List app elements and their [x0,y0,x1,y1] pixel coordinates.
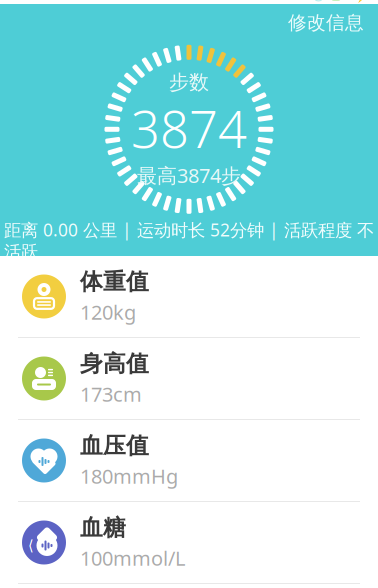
staticText: ⟨ [28,537,34,554]
staticText: 下午3:01 [179,0,242,7]
button[interactable]: 身高值 [0,338,378,420]
staticText: 血压值 [80,432,149,460]
staticText: ⚡ [355,0,370,3]
staticText: 120kg [80,299,136,325]
button[interactable]: ⟨ [0,502,378,584]
staticText: 173cm [80,381,142,407]
staticText: 最高3874步 [137,162,241,189]
staticText: 100mmol/L [80,545,185,571]
button[interactable]: 体重值 [0,256,378,338]
staticText: 180mmHg [80,463,178,489]
staticText: 身高值 [80,350,149,378]
staticText: 中国移动 [24,0,84,5]
button[interactable]: 血压值 [0,420,378,502]
staticText: 4G [89,0,108,6]
staticText: 3874 [131,95,247,162]
staticText: 修改信息 [288,11,364,34]
button[interactable]: 修改信息 [274,7,378,38]
staticText: 体重值 [80,268,149,296]
staticText: 步数 [169,70,209,95]
staticText: 血糖 [80,514,126,542]
staticText: 距离 0.00 公里 | 运动时长 52分钟 | 活跃程度 不活跃 [4,218,374,263]
